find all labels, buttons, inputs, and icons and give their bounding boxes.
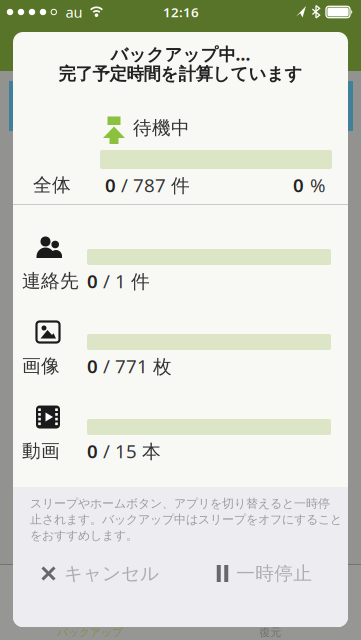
staticText: au — [65, 2, 82, 22]
staticText: 完了予定時間を計算しています — [58, 63, 302, 85]
staticText: 連絡先 — [22, 269, 79, 292]
staticText: 0 — [105, 173, 116, 197]
staticText: % — [310, 173, 326, 197]
staticText: / 15 本 — [98, 439, 161, 463]
staticText: バックアップ中... — [110, 42, 250, 65]
staticText: 待機中 — [133, 116, 190, 139]
staticText: / 787 件 — [116, 173, 190, 197]
staticText: / 771 枚 — [98, 354, 172, 378]
staticText: 全体 — [33, 173, 71, 196]
staticText: バックアップ — [57, 626, 123, 639]
staticText: 0 — [87, 439, 98, 463]
staticText: 動画 — [22, 439, 60, 462]
staticText: 止されます。バックアップ中はスリープをオフにすること — [30, 512, 342, 527]
staticText: をおすすめします。 — [30, 528, 138, 543]
button[interactable]: 一時停止 — [207, 554, 322, 593]
staticText: / 1 件 — [98, 269, 150, 293]
staticText: 12:16 — [163, 3, 199, 21]
staticText: キャンセル — [64, 562, 159, 585]
staticText: 0 — [87, 354, 98, 378]
staticText: 0 — [87, 269, 98, 293]
staticText: 画像 — [22, 354, 60, 377]
staticText: スリープやホームボタン、アプリを切り替えると一時停 — [30, 496, 330, 511]
button[interactable]: キャンセル — [31, 554, 169, 593]
staticText: 0 — [293, 173, 304, 197]
staticText: 一時停止 — [236, 562, 312, 585]
staticText: 復元 — [259, 626, 281, 639]
